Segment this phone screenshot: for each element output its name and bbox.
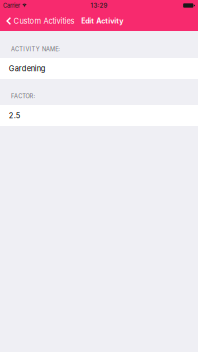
- staticText: 2.5: [9, 111, 21, 120]
- staticText: Carrier: [3, 2, 20, 9]
- staticText: FACTOR:: [11, 93, 36, 99]
- staticText: Gardening: [9, 64, 46, 73]
- staticText: Edit Activity: [81, 17, 123, 25]
- staticText: ACTIVITY NAME:: [11, 46, 60, 52]
- button[interactable]: 2.5: [0, 105, 198, 126]
- button[interactable]: Gardening: [0, 58, 198, 79]
- staticText: 13:29: [90, 2, 107, 9]
- staticText: Custom Activities: [13, 16, 74, 25]
- button[interactable]: Custom Activities: [0, 13, 74, 28]
